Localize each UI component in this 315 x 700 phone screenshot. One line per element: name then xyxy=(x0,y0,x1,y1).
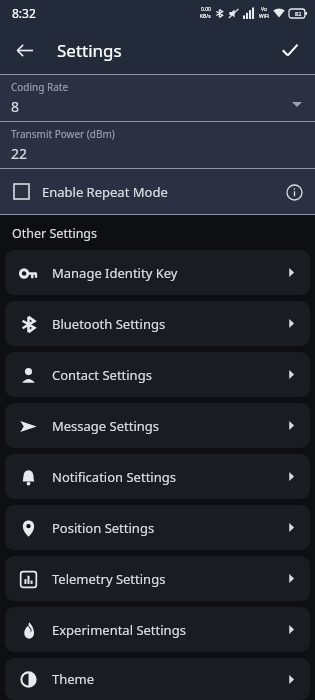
button[interactable]: Position Settings xyxy=(5,505,310,550)
button[interactable]: Enable Repeat Mode xyxy=(0,169,315,214)
button[interactable]: Coding Rate xyxy=(0,75,315,121)
staticText: Notification Settings xyxy=(52,468,176,486)
staticText: Vo xyxy=(261,6,267,13)
button[interactable]: Theme xyxy=(5,658,310,700)
button[interactable]: Bluetooth Settings xyxy=(5,301,310,346)
staticText: Manage Identity Key xyxy=(52,264,178,282)
button[interactable]: Contact Settings xyxy=(5,352,310,397)
staticText: 8 xyxy=(11,97,20,116)
button[interactable]: Back xyxy=(10,36,38,64)
staticText: 22 xyxy=(11,144,28,163)
button[interactable]: Notification Settings xyxy=(5,454,310,499)
staticText: 0.00 xyxy=(201,6,211,13)
staticText: Contact Settings xyxy=(52,366,152,384)
staticText: Position Settings xyxy=(52,519,155,537)
staticText: Theme xyxy=(52,670,95,688)
button[interactable]: Transmit Power (dBm) xyxy=(0,122,315,168)
staticText: KB/s xyxy=(200,13,211,20)
staticText: Settings xyxy=(57,39,122,62)
staticText: Message Settings xyxy=(52,417,160,435)
button[interactable]: Info xyxy=(281,179,307,205)
staticText: Transmit Power (dBm) xyxy=(11,127,115,141)
staticText: Experimental Settings xyxy=(52,621,186,639)
button[interactable]: Experimental Settings xyxy=(5,607,310,652)
staticText: Other Settings xyxy=(12,225,98,242)
staticText: Telemetry Settings xyxy=(52,570,166,588)
staticText: Coding Rate xyxy=(11,80,69,94)
staticText: Enable Repeat Mode xyxy=(42,183,168,201)
button[interactable]: Telemetry Settings xyxy=(5,556,310,601)
button[interactable]: Save xyxy=(275,35,305,65)
button[interactable]: Message Settings xyxy=(5,403,310,448)
staticText: 82 xyxy=(295,10,302,17)
staticText: Bluetooth Settings xyxy=(52,315,166,333)
staticText: WiFi xyxy=(259,13,269,20)
button[interactable]: Manage Identity Key xyxy=(5,250,310,295)
staticText: 8:32 xyxy=(12,5,36,21)
